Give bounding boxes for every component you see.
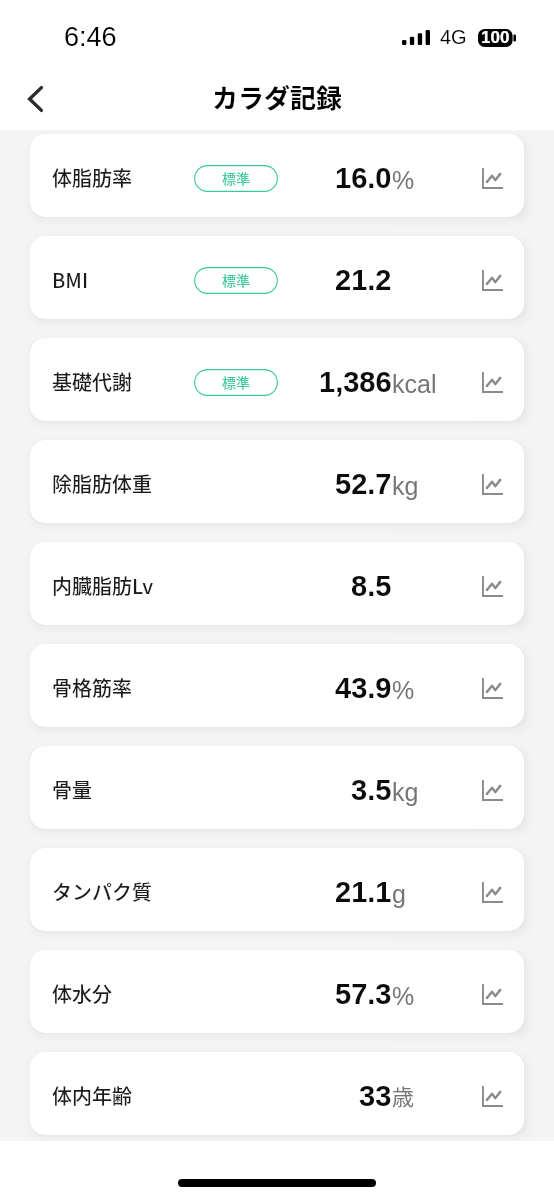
button[interactable]: Show 骨格筋率 graph xyxy=(470,664,514,708)
staticText: % xyxy=(392,676,415,704)
staticText: kg xyxy=(392,778,419,806)
button[interactable]: Show 骨量 graph xyxy=(470,766,514,810)
staticText: 57.3 xyxy=(335,978,392,1010)
staticText: 3.5 xyxy=(351,774,392,806)
staticText: kcal xyxy=(392,370,437,398)
button[interactable]: BMI xyxy=(30,236,524,319)
staticText: 標準 xyxy=(222,372,250,392)
staticText: 100 xyxy=(481,28,510,47)
staticText: カラダ記録 xyxy=(212,78,343,116)
button[interactable]: Show 内臓脂肪Lv graph xyxy=(470,562,514,606)
staticText: 骨量 xyxy=(52,775,92,804)
staticText: 内臓脂肪Lv xyxy=(52,571,154,600)
staticText: 基礎代謝 xyxy=(52,367,132,396)
staticText: 歳 xyxy=(392,1079,415,1111)
staticText: 1,386 xyxy=(319,366,392,398)
button[interactable]: 体脂肪率 xyxy=(30,134,524,217)
button[interactable]: Back xyxy=(8,71,63,126)
staticText: g xyxy=(392,880,406,908)
staticText: % xyxy=(392,982,415,1010)
button[interactable]: 内臓脂肪Lv xyxy=(30,542,524,625)
staticText: 16.0 xyxy=(335,162,392,194)
staticText: 体内年齢 xyxy=(52,1081,132,1110)
button[interactable]: Show 体内年齢 graph xyxy=(470,1072,514,1116)
button[interactable]: 標準 xyxy=(194,165,278,192)
button[interactable]: 基礎代謝 xyxy=(30,338,524,421)
button[interactable]: Show 除脂肪体重 graph xyxy=(470,460,514,504)
button[interactable]: Show BMI graph xyxy=(470,256,514,300)
staticText: 33 xyxy=(359,1080,392,1112)
button[interactable]: Show 体脂肪率 graph xyxy=(470,154,514,198)
button[interactable]: Show 体水分 graph xyxy=(470,970,514,1014)
staticText: 4G xyxy=(440,26,467,48)
staticText: 骨格筋率 xyxy=(52,673,132,702)
button[interactable]: 骨格筋率 xyxy=(30,644,524,727)
button[interactable]: Show 基礎代謝 graph xyxy=(470,358,514,402)
staticText: 52.7 xyxy=(335,468,392,500)
staticText: 体水分 xyxy=(52,979,112,1008)
button[interactable]: タンパク質 xyxy=(30,848,524,931)
staticText: 標準 xyxy=(222,270,250,290)
staticText: 6:46 xyxy=(64,22,117,52)
staticText: kg xyxy=(392,472,419,500)
staticText: 43.9 xyxy=(335,672,392,704)
staticText: 標準 xyxy=(222,168,250,188)
staticText: 除脂肪体重 xyxy=(52,469,152,498)
staticText: 体脂肪率 xyxy=(52,163,132,192)
button[interactable]: 標準 xyxy=(194,267,278,294)
staticText: 21.2 xyxy=(335,264,392,296)
button[interactable]: 体内年齢 xyxy=(30,1052,524,1135)
button[interactable]: Show タンパク質 graph xyxy=(470,868,514,912)
button[interactable]: 体水分 xyxy=(30,950,524,1033)
staticText: タンパク質 xyxy=(52,877,152,906)
button[interactable]: 標準 xyxy=(194,369,278,396)
button[interactable]: 骨量 xyxy=(30,746,524,829)
staticText: 8.5 xyxy=(351,570,392,602)
button[interactable]: 除脂肪体重 xyxy=(30,440,524,523)
staticText: BMI xyxy=(52,265,89,294)
staticText: % xyxy=(392,166,415,194)
staticText: 21.1 xyxy=(335,876,392,908)
